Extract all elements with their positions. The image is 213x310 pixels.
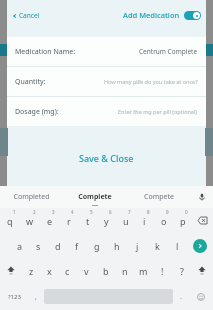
staticText: Medication Name: (15, 47, 76, 57)
button[interactable]: Emoji (189, 283, 213, 310)
button[interactable]: g (87, 233, 107, 258)
staticText: 3 (52, 209, 55, 215)
staticText: k (155, 240, 160, 252)
button[interactable]: Complete (63, 186, 127, 208)
staticText: 9 (166, 209, 169, 215)
button[interactable]: t (78, 208, 97, 233)
button[interactable]: Medication Name: (7, 37, 206, 66)
staticText: 7 (128, 209, 131, 215)
staticText: ?123 (8, 293, 21, 301)
button[interactable]: Next (187, 233, 213, 258)
staticText: e (47, 215, 53, 227)
staticText: d (55, 240, 61, 252)
staticText: h (114, 240, 120, 252)
button[interactable]: j (127, 233, 147, 258)
staticText: , (35, 292, 37, 302)
button[interactable]: s (29, 233, 48, 258)
staticText: Save & Close (79, 152, 134, 164)
staticText: Dosage (mg): (15, 107, 59, 117)
button[interactable]: ? (172, 258, 191, 283)
staticText: n (122, 265, 128, 277)
staticText: Completed (13, 192, 50, 202)
button[interactable]: Save & Close (7, 138, 206, 178)
staticText: ! (161, 265, 164, 277)
button[interactable]: Dosage (mg): (7, 97, 206, 126)
staticText: How many pills do you take at once? (104, 78, 198, 85)
button[interactable]: Cancel (12, 11, 40, 20)
button[interactable]: l (167, 233, 187, 258)
staticText: u (123, 215, 129, 227)
button[interactable]: p (173, 208, 192, 233)
button[interactable]: u (116, 208, 135, 233)
staticText: t (86, 215, 90, 227)
button[interactable]: v (77, 258, 96, 283)
staticText: v (84, 265, 89, 277)
staticText: l (176, 240, 179, 252)
button[interactable]: n (115, 258, 134, 283)
button[interactable]: Quantity: (7, 67, 206, 96)
staticText: Quantity: (15, 77, 46, 87)
staticText: Complete (78, 192, 112, 202)
button[interactable]: Completed (0, 186, 63, 208)
button[interactable]: c (58, 258, 77, 283)
button[interactable]: d (48, 233, 67, 258)
button[interactable]: Voice input (191, 186, 213, 208)
button[interactable]: f (67, 233, 87, 258)
staticText: 8 (147, 209, 150, 215)
staticText: . (180, 292, 182, 302)
staticText: p (180, 215, 186, 227)
button[interactable]: r (59, 208, 78, 233)
button[interactable]: e (40, 208, 59, 233)
staticText: Cancel (19, 11, 40, 20)
staticText: a (17, 240, 23, 252)
button[interactable]: Shift (191, 258, 213, 283)
button[interactable]: q (0, 208, 20, 233)
button[interactable]: z (22, 258, 40, 283)
staticText: r (67, 215, 71, 227)
button[interactable]: i (135, 208, 154, 233)
button[interactable]: x (40, 258, 58, 283)
button[interactable]: Toggle Add Medication (184, 11, 201, 20)
button[interactable]: Add Medication (123, 10, 180, 20)
staticText: 4 (71, 209, 74, 215)
staticText: Centrum Complete (139, 47, 198, 56)
staticText: ? (180, 265, 184, 277)
button[interactable]: o (154, 208, 173, 233)
button[interactable]: ?123 (0, 283, 28, 310)
staticText: f (75, 240, 79, 252)
button[interactable]: k (147, 233, 167, 258)
staticText: Compete (144, 192, 174, 202)
staticText: c (65, 265, 70, 277)
staticText: y (104, 215, 109, 227)
button[interactable]: Backspace (192, 208, 213, 233)
button[interactable]: Compete (127, 186, 191, 208)
staticText: q (7, 215, 13, 227)
staticText: 1 (13, 209, 16, 215)
staticText: 6 (109, 209, 112, 215)
staticText: 0 (185, 209, 188, 215)
button[interactable]: y (97, 208, 116, 233)
button[interactable]: b (96, 258, 115, 283)
staticText: 5 (90, 209, 93, 215)
staticText: j (136, 240, 139, 252)
button[interactable]: Shift (0, 258, 22, 283)
staticText: g (94, 240, 100, 252)
staticText: x (47, 265, 52, 277)
button[interactable]: w (20, 208, 40, 233)
staticText: 2 (33, 209, 36, 215)
button[interactable]: , (28, 283, 44, 310)
button[interactable]: ! (153, 258, 172, 283)
staticText: o (161, 215, 167, 227)
staticText: b (103, 265, 109, 277)
staticText: m (139, 265, 148, 277)
button[interactable]: m (134, 258, 153, 283)
staticText: s (36, 240, 41, 252)
button[interactable]: a (10, 233, 29, 258)
staticText: i (143, 215, 146, 227)
staticText: z (29, 265, 34, 277)
staticText: w (26, 215, 34, 227)
button[interactable]: h (107, 233, 127, 258)
staticText: Enter the mg per pill (optional) (118, 108, 198, 115)
